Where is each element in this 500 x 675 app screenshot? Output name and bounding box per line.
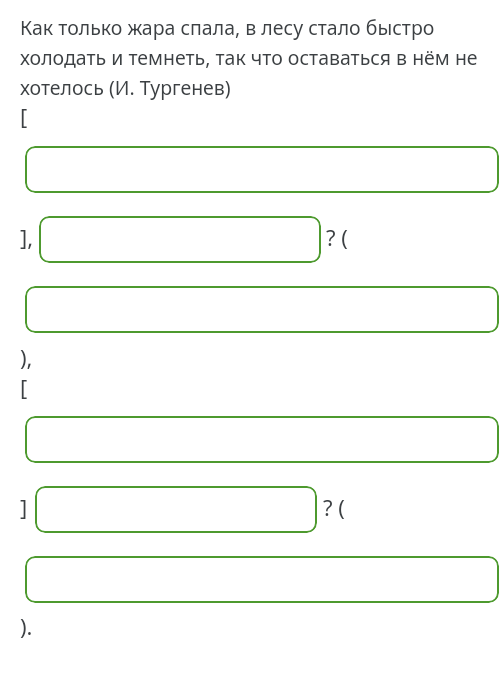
staticText: ] xyxy=(20,492,28,522)
staticText: ? ( xyxy=(323,492,345,522)
button[interactable]: Ответ 1 xyxy=(25,146,499,193)
staticText: ? ( xyxy=(326,222,348,252)
button[interactable]: Ответ 4 xyxy=(25,416,499,463)
button[interactable]: Ответ 5 xyxy=(35,486,317,533)
button[interactable]: Ответ 3 xyxy=(25,286,499,333)
button[interactable]: Ответ 6 xyxy=(25,556,499,603)
staticText: ), xyxy=(20,342,33,372)
staticText: Как только жара спала, в лесу стало быст… xyxy=(20,14,478,100)
staticText: [ xyxy=(20,372,28,402)
staticText: ). xyxy=(20,611,33,641)
staticText: [ xyxy=(20,101,28,131)
staticText: ], xyxy=(20,222,34,252)
button[interactable]: Ответ 2 xyxy=(39,216,321,263)
